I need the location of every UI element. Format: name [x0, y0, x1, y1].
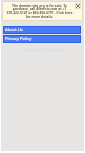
staticText: The domain site.org is for sale. To purc…	[5, 3, 74, 19]
button[interactable]: Privacy Policy	[3, 35, 81, 43]
button[interactable]: About Us	[3, 26, 81, 34]
staticText: About Us	[5, 27, 24, 33]
button[interactable]: Close notice	[75, 3, 81, 9]
staticText: Privacy Policy	[5, 36, 32, 42]
